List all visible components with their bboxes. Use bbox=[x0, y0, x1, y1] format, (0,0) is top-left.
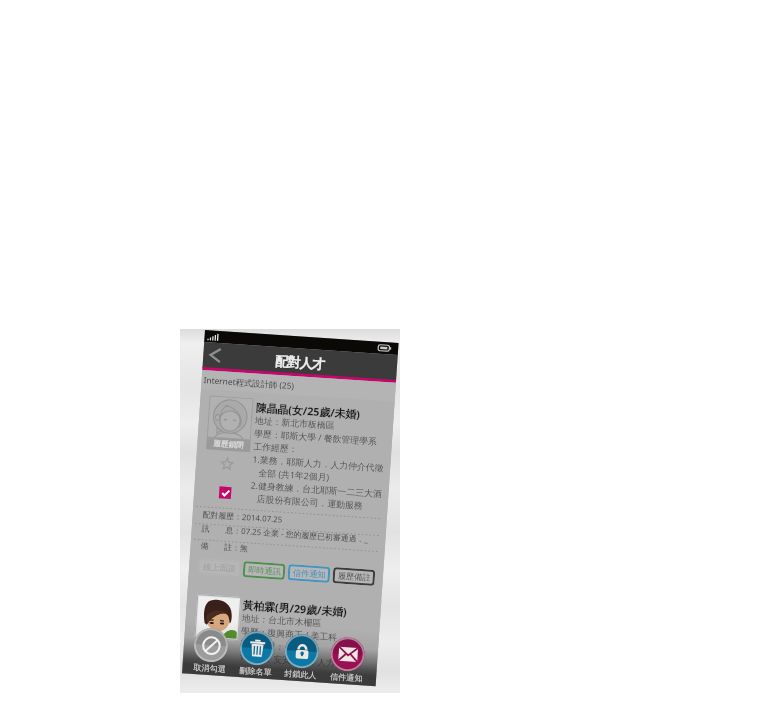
staticText: 即時通訊 bbox=[248, 564, 281, 577]
button[interactable]: 取消勾選 bbox=[186, 627, 235, 675]
staticText: 店股份有限公司．運動服務 bbox=[249, 492, 364, 512]
staticText: 全部 (共1年2個月) bbox=[251, 466, 330, 484]
staticText: 訊 息：07.25 企業 - 您的履歷已初審通過．_ bbox=[201, 523, 369, 545]
staticText: Internet程式設計師 (25) bbox=[203, 374, 295, 391]
staticText: 陳晶晶(女/25歲/未婚) bbox=[255, 400, 361, 422]
staticText: 線上面談 bbox=[203, 561, 236, 574]
staticText: 1.業務．耶斯人力．人力仲介代徵 bbox=[252, 453, 385, 474]
staticText: 履歷備註 bbox=[338, 570, 371, 583]
staticText: 刪除名單 bbox=[239, 665, 273, 677]
staticText: 取消勾選 bbox=[193, 662, 227, 674]
button[interactable]: 刪除名單 bbox=[232, 630, 281, 678]
button[interactable]: Selected bbox=[219, 486, 232, 499]
staticText: 地址：新北市板橋區 bbox=[255, 415, 335, 431]
staticText: 信件通知 bbox=[330, 671, 363, 683]
button[interactable]: 信件通知 bbox=[287, 564, 330, 583]
staticText: 工作經歷： bbox=[253, 440, 299, 454]
button[interactable]: Back bbox=[202, 342, 227, 368]
button[interactable]: Favourite bbox=[221, 457, 233, 470]
staticText: 2.健身教練．台北耶斯一二三大酒 bbox=[250, 479, 383, 500]
staticText: 備 註：無 bbox=[200, 540, 249, 554]
staticText: 學歷：耶斯大學 / 餐飲管理學系 bbox=[254, 427, 377, 448]
staticText: 封鎖此人 bbox=[284, 668, 317, 680]
staticText: 配對履歷：2014.07.25 bbox=[202, 509, 283, 526]
staticText: 履歷鎖閉 bbox=[213, 439, 245, 451]
button[interactable]: 封鎖此人 bbox=[277, 633, 326, 681]
staticText: 地址：台北市木柵區 bbox=[241, 612, 322, 628]
button[interactable]: 履歷備註 bbox=[332, 567, 375, 586]
staticText: 黃柏霖(男/29歲/未婚) bbox=[242, 597, 348, 619]
staticText: 工作經歷： bbox=[240, 638, 285, 652]
staticText: 信件通知 bbox=[293, 567, 326, 580]
staticText: 1.業務．安安人力．人力仲介 bbox=[239, 651, 353, 671]
button[interactable]: 即時通訊 bbox=[243, 561, 286, 580]
staticText: 學歷：復興商工 / 美工科 bbox=[241, 625, 338, 644]
button[interactable]: 信件通知 bbox=[323, 636, 372, 684]
staticText: 配對人才 bbox=[274, 353, 325, 373]
button[interactable]: 線上面談 bbox=[198, 558, 241, 577]
